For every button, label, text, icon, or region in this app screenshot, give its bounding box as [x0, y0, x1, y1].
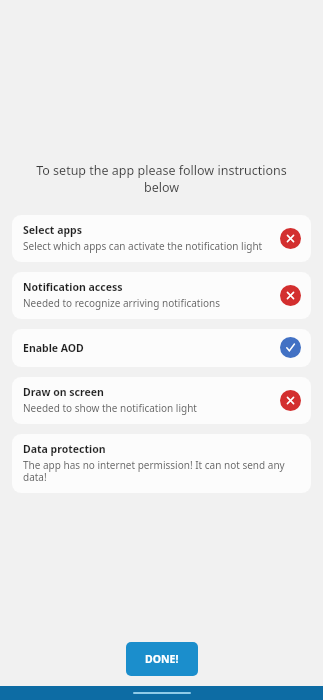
staticText: Select apps — [23, 223, 82, 237]
staticText: DONE! — [145, 652, 179, 666]
staticText: To setup the app please follow instructi… — [34, 162, 289, 196]
staticText: Select which apps can activate the notif… — [23, 239, 263, 253]
staticText: Needed to recognize arriving notificatio… — [23, 296, 221, 310]
button[interactable]: Configured — [280, 337, 301, 358]
staticText: Enable AOD — [23, 341, 84, 355]
button[interactable]: Data protection — [12, 434, 311, 493]
button[interactable]: Draw on screen — [12, 377, 311, 424]
staticText: Data protection — [23, 442, 106, 456]
button[interactable]: Notification access — [12, 272, 311, 319]
staticText: Draw on screen — [23, 385, 104, 399]
button[interactable]: Enable AOD — [12, 329, 311, 367]
button[interactable]: Select apps — [12, 215, 311, 262]
staticText: Needed to show the notification light — [23, 401, 197, 415]
staticText: The app has no internet permission! It c… — [23, 458, 301, 484]
button[interactable]: Not configured, tap to configure — [280, 390, 301, 411]
button[interactable]: Not configured, tap to configure — [280, 228, 301, 249]
button[interactable]: Not configured, tap to configure — [280, 285, 301, 306]
button[interactable]: DONE! — [126, 642, 198, 676]
staticText: Notification access — [23, 280, 123, 294]
